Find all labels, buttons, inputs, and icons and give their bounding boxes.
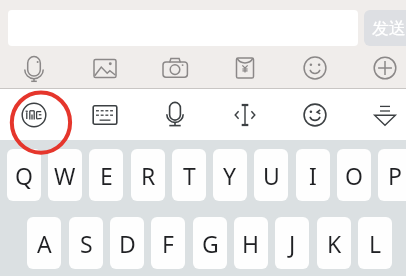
button[interactable]: Voice input — [140, 89, 210, 140]
button[interactable]: D — [110, 217, 144, 269]
staticText: Q — [15, 160, 33, 191]
button[interactable]: Move cursor — [210, 89, 280, 140]
staticText: O — [345, 160, 363, 191]
button[interactable]: U — [254, 149, 288, 201]
button[interactable]: E — [89, 149, 123, 201]
staticText: D — [119, 228, 136, 259]
staticText: Y — [223, 160, 237, 191]
button[interactable]: I — [296, 149, 330, 201]
button[interactable]: F — [151, 217, 185, 269]
button[interactable]: K — [317, 217, 351, 269]
staticText: G — [202, 228, 219, 259]
button[interactable]: Emoji — [280, 89, 350, 140]
staticText: P — [388, 160, 402, 191]
button[interactable]: R — [131, 149, 165, 201]
button[interactable]: Voice message — [0, 47, 69, 89]
button[interactable]: Y — [213, 149, 247, 201]
button[interactable]: A — [27, 217, 61, 269]
staticText: U — [263, 160, 280, 191]
button[interactable]: G — [193, 217, 227, 269]
button[interactable]: Red packet — [210, 47, 280, 89]
button[interactable]: Photo — [70, 47, 140, 89]
staticText: A — [37, 228, 52, 259]
button[interactable]: More options — [350, 47, 406, 89]
staticText: E — [100, 160, 113, 191]
button[interactable]: Keyboard — [70, 89, 140, 140]
staticText: R — [141, 160, 156, 191]
button[interactable]: J — [275, 217, 309, 269]
button[interactable]: O — [337, 149, 371, 201]
staticText: F — [162, 228, 174, 259]
staticText: H — [242, 228, 260, 259]
staticText: W — [54, 160, 76, 191]
button[interactable]: L — [358, 217, 392, 269]
button[interactable]: P — [378, 149, 406, 201]
button[interactable]: Input method — [0, 89, 69, 140]
button[interactable]: T — [172, 149, 206, 201]
button[interactable]: 发送 — [364, 10, 406, 46]
staticText: J — [289, 228, 296, 259]
staticText: I — [309, 160, 317, 191]
staticText: K — [327, 228, 342, 259]
staticText: 发送 — [372, 18, 406, 39]
button[interactable]: Q — [7, 149, 41, 201]
button[interactable]: H — [234, 217, 268, 269]
button[interactable]: Hide keyboard — [350, 89, 406, 140]
staticText: S — [80, 228, 93, 259]
button[interactable]: S — [69, 217, 103, 269]
staticText: T — [183, 160, 196, 191]
staticText: L — [369, 228, 382, 259]
button[interactable]: W — [48, 149, 82, 201]
button[interactable]: Emoji — [280, 47, 350, 89]
button[interactable]: Camera — [140, 47, 210, 89]
